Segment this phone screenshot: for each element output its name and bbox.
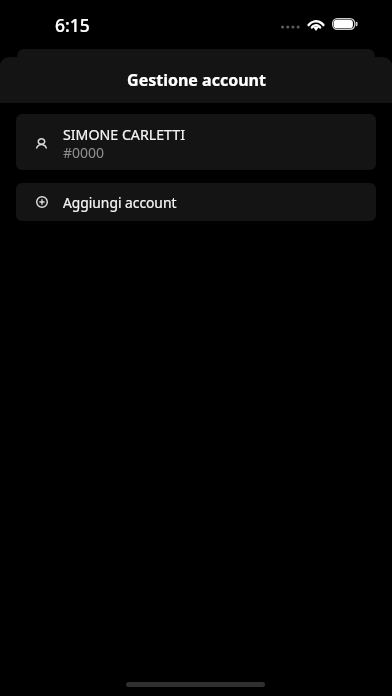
staticText: Gestione account	[127, 69, 266, 91]
other: Aggiungi account	[36, 196, 48, 208]
button[interactable]: Aggiungi account	[16, 183, 376, 221]
staticText: 6:15	[55, 13, 90, 37]
staticText: SIMONE CARLETTI	[63, 125, 185, 144]
staticText: Aggiungi account	[63, 193, 177, 212]
staticText: #0000	[63, 143, 105, 162]
button[interactable]: SIMONE CARLETTI	[16, 114, 376, 170]
